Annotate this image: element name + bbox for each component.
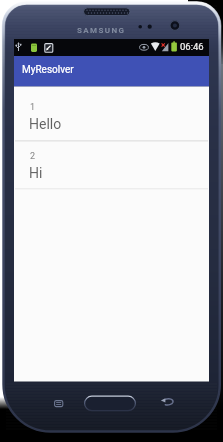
staticText: MyResolver: [22, 64, 74, 76]
staticText: SAMSUNG: [77, 26, 126, 35]
staticText: Hello: [29, 116, 62, 132]
staticText: 06:46: [180, 41, 204, 52]
staticText: 1: [30, 102, 36, 113]
staticText: 2: [30, 151, 36, 162]
button[interactable]: 1: [14, 87, 209, 142]
staticText: Hi: [29, 165, 43, 181]
button[interactable]: 2: [14, 141, 209, 189]
